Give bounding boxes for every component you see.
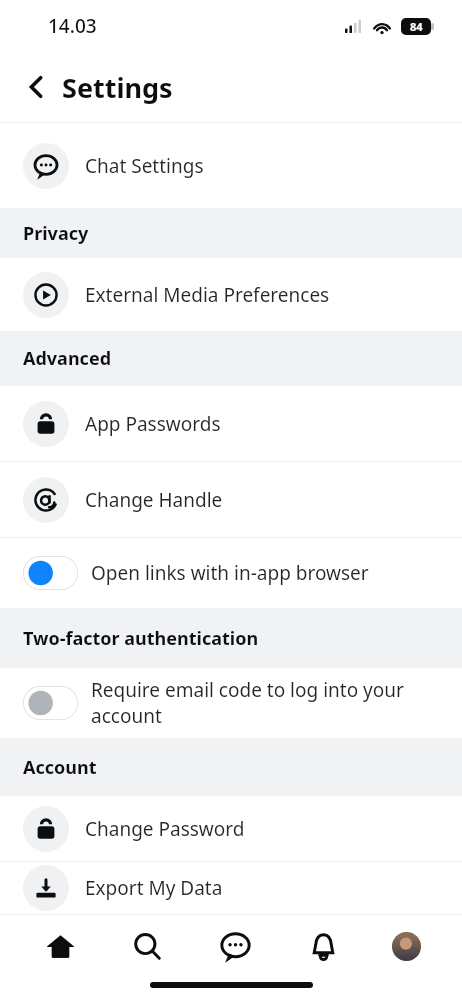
staticText: Require email code to log into your acco… (91, 677, 462, 729)
staticText: Change Handle (85, 487, 223, 513)
button[interactable]: Chat Settings (0, 123, 462, 208)
button[interactable]: Chat (207, 918, 263, 974)
button[interactable]: Profile (382, 922, 430, 970)
staticText: External Media Preferences (85, 282, 330, 308)
button[interactable]: Notifications (295, 918, 351, 974)
staticText: Two-factor authentication (23, 626, 259, 651)
button[interactable]: External Media Preferences (0, 258, 462, 331)
staticText: Privacy (23, 221, 89, 246)
button[interactable]: Search (119, 918, 175, 974)
button[interactable]: Open links with in-app browser (0, 538, 462, 608)
button[interactable]: Change Password (0, 796, 462, 861)
button[interactable]: Require email code to log into your acco… (0, 668, 462, 738)
staticText: 84 (410, 19, 423, 34)
staticText: App Passwords (85, 411, 221, 437)
button[interactable]: Back (18, 69, 54, 105)
staticText: Export My Data (85, 875, 223, 901)
staticText: Chat Settings (85, 153, 204, 179)
button[interactable]: Home (32, 918, 88, 974)
button[interactable]: Export My Data (0, 862, 462, 914)
staticText: 14.03 (48, 13, 97, 39)
staticText: Advanced (23, 346, 112, 371)
button[interactable]: Change Handle (0, 462, 462, 537)
staticText: Settings (62, 69, 173, 106)
staticText: Change Password (85, 816, 245, 842)
staticText: Account (23, 755, 97, 780)
button[interactable]: App Passwords (0, 386, 462, 461)
staticText: Open links with in-app browser (91, 560, 369, 586)
